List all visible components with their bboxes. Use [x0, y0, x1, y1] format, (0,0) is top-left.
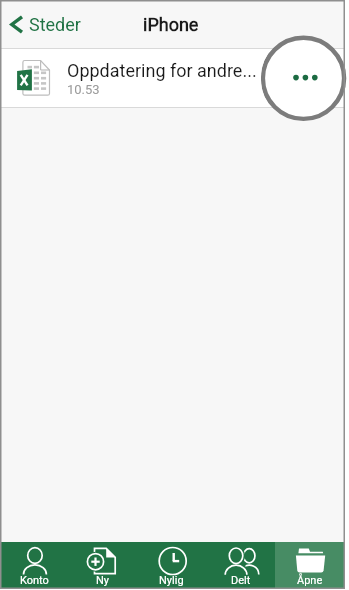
staticText: Steder	[29, 14, 81, 35]
staticText: 10.53	[67, 82, 100, 97]
button[interactable]: More options	[261, 34, 347, 123]
button[interactable]: Konto	[0, 542, 68, 588]
button[interactable]: Ny	[68, 542, 137, 588]
staticText: Åpne	[297, 574, 323, 587]
button[interactable]: Steder	[0, 0, 89, 49]
staticText: Nylig	[159, 574, 184, 587]
staticText: Oppdatering for andre...	[67, 60, 257, 81]
button[interactable]: Nylig	[137, 542, 206, 588]
staticText: iPhone	[143, 14, 199, 35]
button[interactable]: Oppdatering for andre...	[0, 49, 344, 108]
staticText: Delt	[231, 574, 251, 587]
staticText: Konto	[20, 574, 49, 587]
button[interactable]: Delt	[206, 542, 275, 588]
button[interactable]: Åpne	[275, 542, 344, 588]
staticText: Ny	[96, 574, 110, 587]
